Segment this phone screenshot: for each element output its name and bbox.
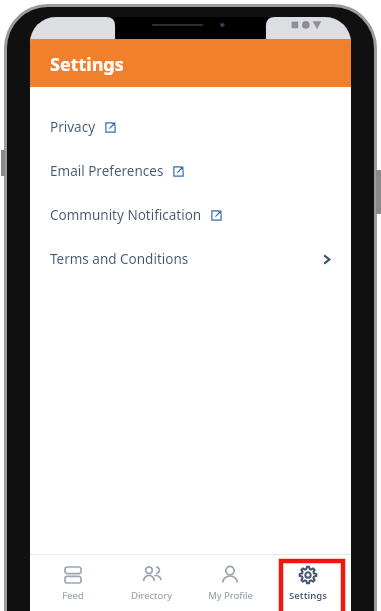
staticText: Settings: [289, 589, 327, 602]
staticText: Privacy: [50, 118, 96, 136]
staticText: Feed: [62, 589, 84, 602]
button[interactable]: Directory: [115, 555, 187, 611]
staticText: My Profile: [208, 589, 253, 602]
other: Opens in new window: [173, 166, 184, 177]
staticText: Settings: [50, 52, 124, 77]
button[interactable]: My Profile: [194, 555, 266, 611]
button[interactable]: Privacy: [30, 105, 351, 149]
staticText: Email Preferences: [50, 162, 164, 180]
other: Open: [320, 253, 333, 266]
button[interactable]: Terms and Conditions: [30, 237, 351, 281]
button[interactable]: Feed: [37, 555, 109, 611]
other: Opens in new window: [105, 122, 116, 133]
staticText: Community Notification: [50, 206, 202, 224]
staticText: Terms and Conditions: [50, 250, 189, 268]
button[interactable]: Settings: [272, 555, 344, 611]
other: Opens in new window: [211, 210, 222, 221]
button[interactable]: Community Notification: [30, 193, 351, 237]
staticText: Directory: [131, 589, 172, 602]
button[interactable]: Email Preferences: [30, 149, 351, 193]
